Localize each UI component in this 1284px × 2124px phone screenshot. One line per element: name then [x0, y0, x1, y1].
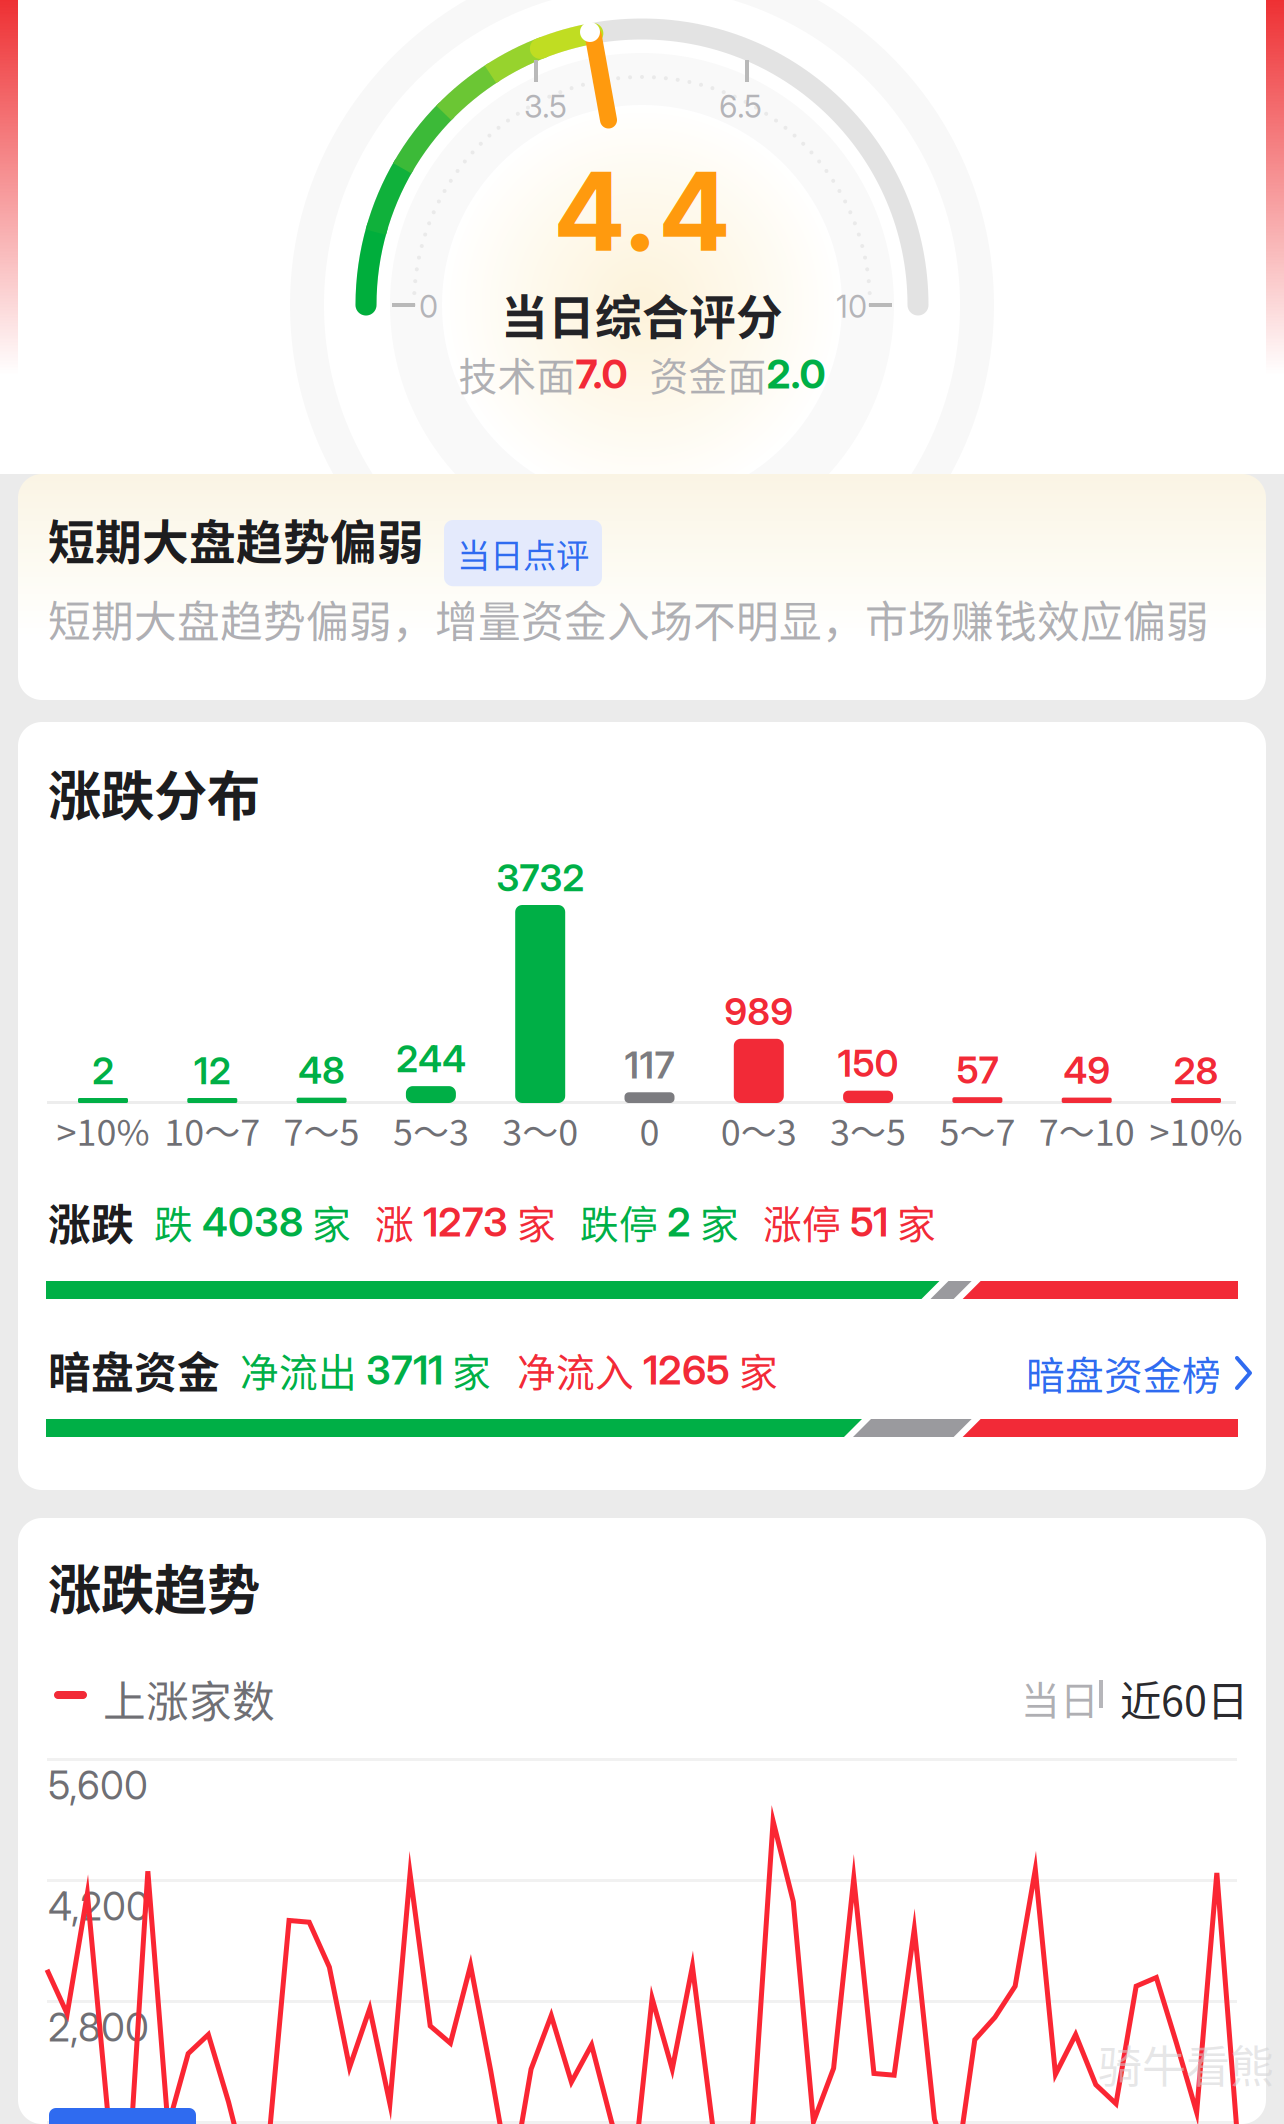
button[interactable]: 当日: [1021, 1670, 1099, 1726]
staticText: 10～7: [164, 1104, 260, 1156]
staticText: 3711: [357, 1346, 452, 1394]
staticText: 10: [836, 288, 867, 325]
staticText: 28: [1173, 1048, 1218, 1093]
staticText: 51: [841, 1198, 897, 1246]
staticText: 跌停: [580, 1194, 658, 1250]
staticText: 暗盘资金: [48, 1339, 220, 1401]
staticText: 近60日: [1120, 1668, 1248, 1728]
staticText: 当日: [1021, 1670, 1099, 1726]
staticText: 家: [452, 1342, 491, 1398]
staticText: >10%: [56, 1104, 149, 1156]
staticText: 短期大盘趋势偏弱，增量资金入场不明显，市场赚钱效应偏弱: [48, 588, 1209, 650]
staticText: 跌: [154, 1194, 193, 1250]
staticText: 家: [739, 1342, 778, 1398]
staticText: 家: [700, 1194, 739, 1250]
staticText: 57: [956, 1047, 998, 1092]
staticText: 家: [517, 1194, 556, 1250]
staticText: 涨跌分布: [48, 754, 260, 831]
staticText: 技术面: [458, 346, 575, 402]
staticText: 4038: [193, 1198, 312, 1246]
staticText: 5,600: [48, 1762, 148, 1809]
staticText: 3.5: [524, 88, 567, 125]
staticText: 5～7: [939, 1104, 1015, 1156]
staticText: 涨跌: [48, 1191, 134, 1253]
staticText: 0～3: [721, 1104, 797, 1156]
staticText: 骑牛看熊: [1098, 2032, 1274, 2096]
staticText: 涨: [375, 1194, 414, 1250]
staticText: 6.5: [719, 88, 762, 125]
staticText: 家: [897, 1194, 936, 1250]
staticText: 49: [1063, 1048, 1110, 1093]
staticText: 244: [396, 1036, 466, 1081]
staticText: 当日综合评分: [501, 280, 783, 348]
staticText: 7～5: [284, 1104, 360, 1156]
staticText: 989: [724, 989, 793, 1034]
staticText: 2: [658, 1198, 700, 1246]
staticText: 7.0: [575, 350, 627, 398]
staticText: 12: [194, 1048, 231, 1093]
staticText: 1265: [634, 1346, 739, 1394]
staticText: 3～0: [502, 1104, 578, 1156]
staticText: 2: [92, 1048, 114, 1093]
staticText: 2,800: [48, 2004, 149, 2051]
staticText: 短期大盘趋势偏弱: [48, 505, 424, 573]
staticText: 净流入: [517, 1342, 634, 1398]
button[interactable]: 近60日: [1120, 1668, 1248, 1728]
staticText: 涨停: [763, 1194, 841, 1250]
staticText: 117: [624, 1042, 674, 1087]
staticText: 暗盘资金榜: [1026, 1345, 1221, 1401]
staticText: 上涨家数: [103, 1668, 275, 1730]
staticText: 1273: [414, 1198, 517, 1246]
staticText: 家: [312, 1194, 351, 1250]
staticText: 150: [838, 1041, 899, 1086]
staticText: 0: [639, 1104, 659, 1156]
staticText: 2.0: [766, 350, 825, 398]
staticText: 涨跌趋势: [48, 1548, 260, 1625]
staticText: 48: [298, 1048, 345, 1093]
staticText: 0: [419, 288, 438, 325]
staticText: >10%: [1149, 1104, 1242, 1156]
button[interactable]: 暗盘资金榜: [1026, 1345, 1253, 1401]
staticText: 资金面: [649, 346, 766, 402]
staticText: 7～10: [1039, 1104, 1135, 1156]
staticText: 4,200: [48, 1883, 150, 1930]
staticText: 当日点评: [457, 529, 589, 577]
staticText: 3～5: [830, 1104, 906, 1156]
staticText: 4.4: [553, 146, 731, 277]
staticText: 3732: [496, 855, 584, 900]
staticText: 净流出: [240, 1342, 357, 1398]
staticText: 5～3: [393, 1104, 469, 1156]
